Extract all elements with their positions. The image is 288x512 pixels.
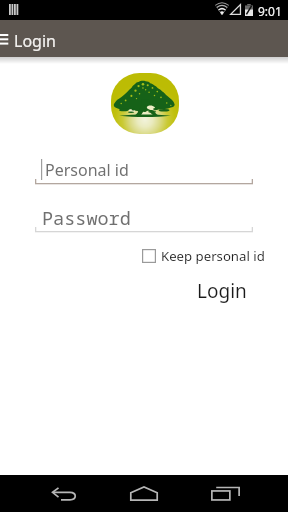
button[interactable]: Open navigation drawer [0,20,14,57]
staticText: Login [197,278,247,304]
staticText: 9:01 [258,3,282,19]
staticText: Login [14,30,56,52]
staticText: Keep personal id [161,247,265,265]
button[interactable]: Keep personal id [140,245,265,267]
button[interactable]: Login [188,275,256,307]
button[interactable]: Recent apps [201,475,249,512]
button[interactable]: Back [40,475,88,512]
button[interactable]: Personal id [35,158,253,188]
staticText: Personal id [45,159,129,181]
staticText: Password [42,205,131,230]
button[interactable]: Password [35,206,253,236]
button[interactable]: Home [120,475,168,512]
